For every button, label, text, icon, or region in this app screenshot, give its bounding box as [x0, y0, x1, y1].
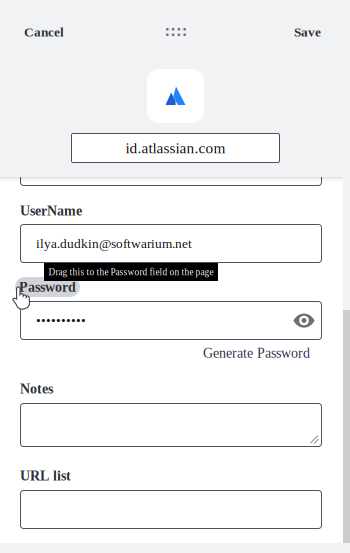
staticText: Password [19, 279, 76, 295]
staticText: Drag this to the Password field on the p… [48, 267, 213, 277]
button[interactable]: Save [285, 19, 321, 45]
staticText: Cancel [24, 25, 64, 39]
button[interactable]: Show password [286, 302, 322, 338]
staticText: ilya.dudkin@softwarium.net [36, 236, 192, 251]
button[interactable]: Drag window [159, 19, 193, 45]
staticText: Notes [20, 381, 53, 396]
button[interactable]: Generate Password [180, 345, 310, 361]
staticText: URL list [20, 468, 71, 483]
staticText: •••••••••• [36, 313, 86, 328]
button[interactable]: Cancel [24, 19, 82, 45]
staticText: UserName [20, 203, 82, 218]
staticText: Generate Password [203, 345, 310, 361]
staticText: id.atlassian.com [125, 139, 225, 156]
staticText: Save [294, 25, 321, 39]
